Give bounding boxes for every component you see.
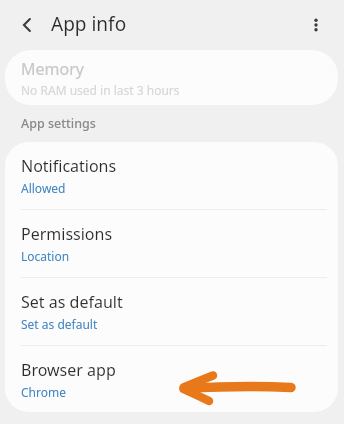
staticText: Set as default — [21, 291, 123, 313]
staticText: App settings — [21, 115, 96, 132]
button[interactable]: Browser app — [5, 346, 338, 412]
staticText: Notifications — [21, 155, 117, 177]
button[interactable]: More options — [297, 6, 335, 44]
staticText: Permissions — [21, 223, 113, 245]
button[interactable]: Back — [8, 6, 46, 44]
button[interactable]: Notifications — [5, 142, 338, 209]
staticText: Chrome — [21, 384, 66, 400]
staticText: App info — [51, 11, 127, 37]
staticText: Allowed — [21, 180, 66, 196]
staticText: Browser app — [21, 359, 116, 381]
staticText: Location — [21, 248, 70, 264]
staticText: Set as default — [21, 316, 98, 332]
button[interactable]: Permissions — [5, 210, 338, 277]
button[interactable]: Memory — [5, 50, 338, 105]
button[interactable]: Set as default — [5, 278, 338, 345]
staticText: No RAM used in last 3 hours — [21, 82, 180, 98]
staticText: Memory — [21, 58, 84, 80]
